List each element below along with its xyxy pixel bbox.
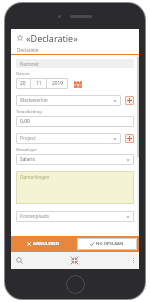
button[interactable]: Medewerker [16,95,121,106]
staticText: Nummer [20,61,40,67]
button[interactable]: Toevoegen [125,96,134,105]
button[interactable]: Opmerkingen [16,171,134,204]
staticText: 11 [36,80,42,87]
staticText: Kostenplaats [20,213,126,220]
staticText: Totaalbedrag [16,109,42,115]
button[interactable]: Meer opties [96,252,139,269]
staticText: 20 [20,80,26,87]
staticText: Datum [16,71,30,77]
staticText: Medewerker [20,97,113,104]
staticText: ANNULEREN [33,241,60,247]
button[interactable]: 0,00 [16,116,134,127]
button[interactable]: Nummer [16,59,134,68]
staticText: «Declaratie» [26,32,78,44]
staticText: 2019 [52,80,63,87]
button[interactable]: NU OPSLAAN [77,238,137,250]
button[interactable]: Project [16,133,121,144]
staticText: NU OPSLAAN [96,241,124,247]
button[interactable]: ANNULEREN [11,236,75,252]
button[interactable]: Zoeken [11,252,53,269]
button[interactable]: Kostenplaats [16,211,134,222]
button[interactable]: Salaris [16,154,134,165]
staticText: Betaaltype [16,147,37,153]
staticText: Opmerkingen [20,174,50,180]
button[interactable]: Kies datum [73,79,82,88]
button[interactable]: 20 [16,78,68,89]
staticText: Project [20,135,113,142]
staticText: Salaris [20,156,126,163]
button[interactable]: Volledig scherm [53,252,96,269]
button[interactable]: Toevoegen [125,134,134,143]
staticText: Declaratie [17,47,39,53]
staticText: 0,00 [20,118,30,125]
